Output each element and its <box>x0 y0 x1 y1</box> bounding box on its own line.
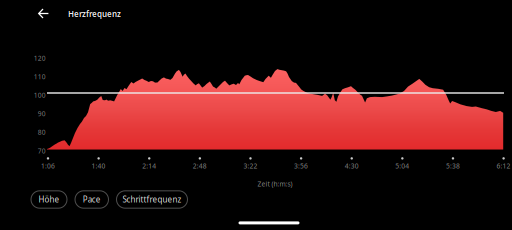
staticText: 4:30 <box>345 161 359 170</box>
staticText: 3:56 <box>294 161 308 170</box>
staticText: Schrittfrequenz <box>122 194 181 205</box>
staticText: Herzfrequenz <box>68 9 121 19</box>
staticText: 2:48 <box>193 161 207 170</box>
staticText: 6:12 <box>497 161 511 170</box>
button[interactable]: Back <box>32 2 55 25</box>
staticText: Pace <box>83 194 101 205</box>
staticText: 100 <box>34 91 46 100</box>
staticText: 110 <box>34 72 46 81</box>
staticText: 3:22 <box>243 161 257 170</box>
staticText: Zeit (h:m:s) <box>257 180 292 188</box>
staticText: 1:06 <box>41 161 55 170</box>
staticText: 2:14 <box>142 161 156 170</box>
button[interactable]: Pace <box>75 191 108 208</box>
staticText: 5:38 <box>446 161 460 170</box>
staticText: 90 <box>38 109 46 118</box>
staticText: 70 <box>38 146 46 155</box>
staticText: 120 <box>34 54 46 63</box>
staticText: 80 <box>38 128 46 137</box>
button[interactable]: Höhe <box>31 191 67 208</box>
staticText: Höhe <box>38 194 59 205</box>
staticText: 1:40 <box>92 161 106 170</box>
staticText: 5:04 <box>395 161 409 170</box>
button[interactable]: Schrittfrequenz <box>116 191 187 208</box>
